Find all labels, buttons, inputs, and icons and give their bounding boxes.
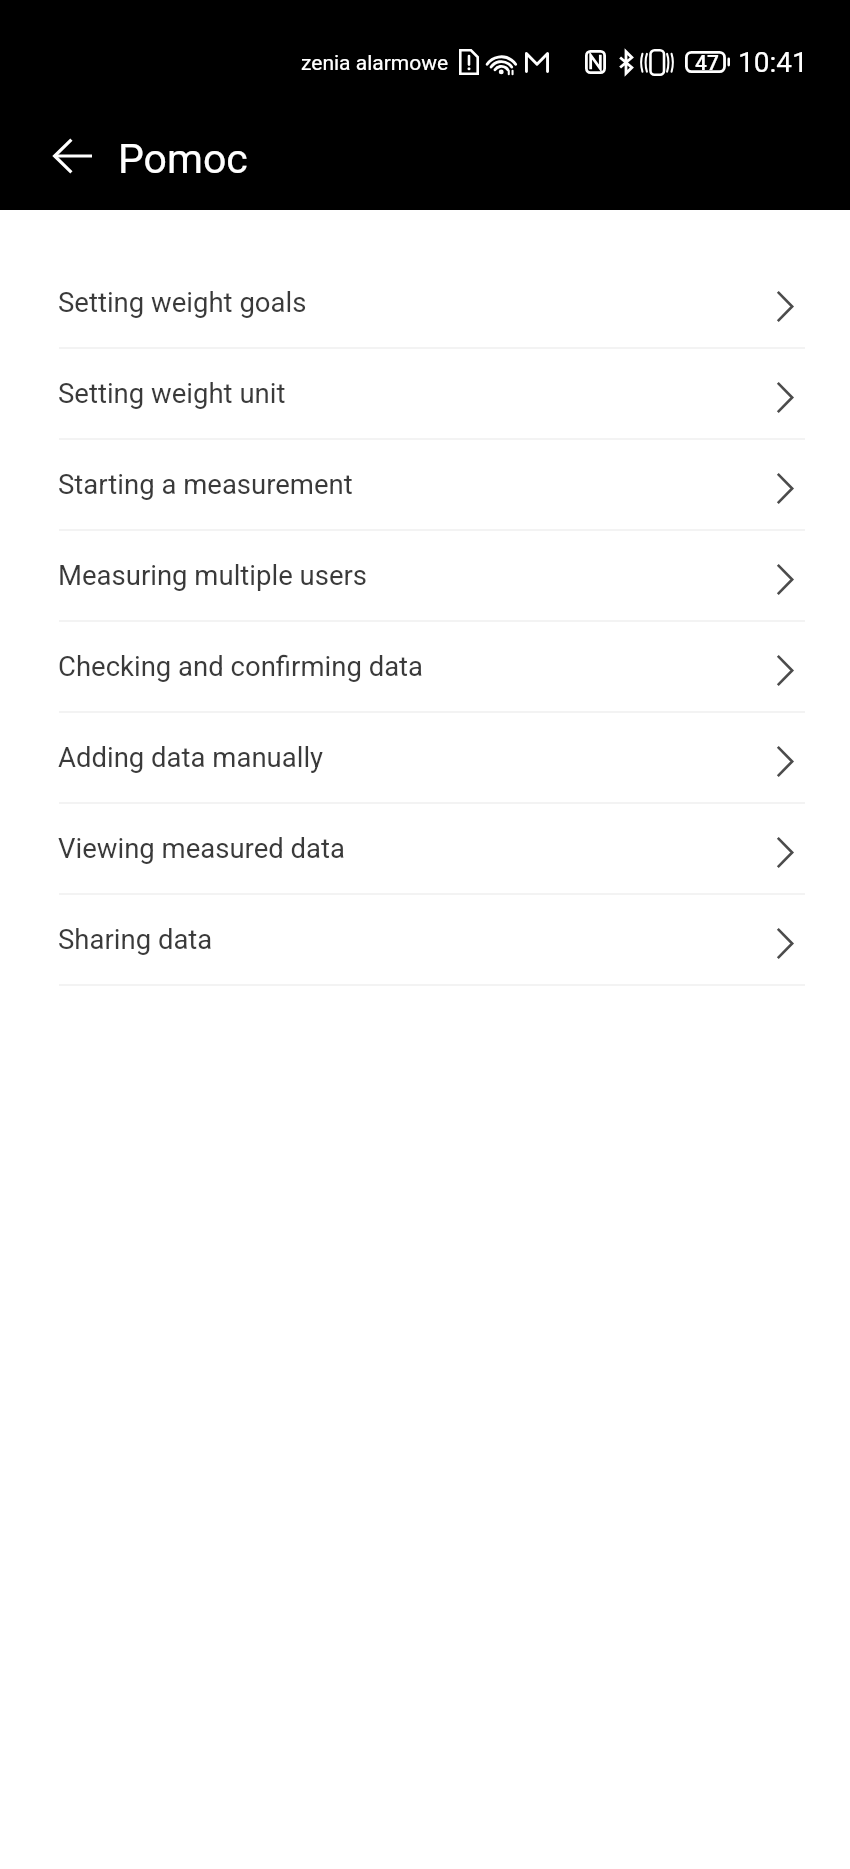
button[interactable]: Viewing measured data xyxy=(0,804,850,895)
button[interactable]: Measuring multiple users xyxy=(0,531,850,622)
button[interactable]: Sharing data xyxy=(0,895,850,986)
staticText: Sharing data xyxy=(58,923,776,955)
button[interactable]: Starting a measurement xyxy=(0,440,850,531)
staticText: Checking and confirming data xyxy=(58,650,776,682)
button[interactable]: Setting weight unit xyxy=(0,349,850,440)
staticText: Adding data manually xyxy=(58,741,776,773)
staticText: Starting a measurement xyxy=(58,468,776,500)
staticText: 47 xyxy=(695,51,719,73)
staticText: zenia alarmowe xyxy=(301,51,449,76)
button[interactable]: Setting weight goals xyxy=(0,258,850,349)
staticText: Viewing measured data xyxy=(58,832,776,864)
staticText: Setting weight goals xyxy=(58,286,776,318)
button[interactable]: Adding data manually xyxy=(0,713,850,804)
button[interactable]: Back xyxy=(0,104,118,208)
staticText: Measuring multiple users xyxy=(58,559,776,591)
staticText: 10:41 xyxy=(738,46,808,79)
staticText: Setting weight unit xyxy=(58,377,776,409)
staticText: Pomoc xyxy=(118,135,248,183)
button[interactable]: Checking and confirming data xyxy=(0,622,850,713)
